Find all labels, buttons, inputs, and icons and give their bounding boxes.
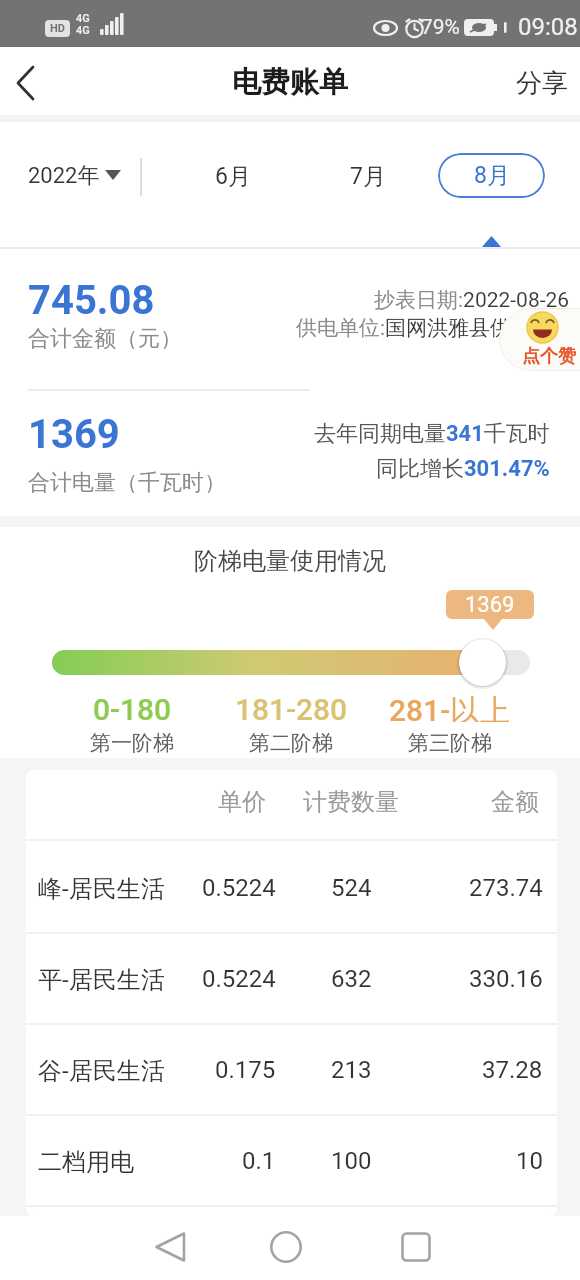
staticText: 1369	[465, 592, 515, 618]
button[interactable]: 谷-居民生活	[26, 1023, 557, 1114]
staticText: 0.5224	[202, 874, 276, 900]
button[interactable]: 7月	[338, 162, 398, 190]
staticText: 谷-居民生活	[38, 1056, 165, 1082]
staticText: 213	[331, 1056, 372, 1082]
staticText: 10	[516, 1147, 543, 1173]
staticText: 平-居民生活	[38, 965, 165, 991]
staticText: 分享	[516, 67, 568, 97]
staticText: 0-180	[93, 692, 172, 722]
staticText: 电费账单	[232, 64, 348, 100]
staticText: 4G	[76, 24, 90, 36]
staticText: 合计电量（千瓦时）	[28, 469, 226, 493]
staticText: 524	[331, 874, 372, 900]
staticText: 抄表日期:2022-08-26	[374, 287, 570, 311]
staticText: 峰-居民生活	[38, 874, 165, 900]
staticText: 0.5224	[202, 965, 276, 991]
staticText: 281-以上	[389, 692, 511, 722]
staticText: 第三阶梯	[408, 730, 492, 754]
button[interactable]	[8, 65, 44, 101]
button[interactable]: 2022年	[28, 162, 108, 190]
staticText: 37.28	[482, 1056, 543, 1082]
staticText: 0.175	[215, 1056, 276, 1082]
button[interactable]	[148, 1225, 192, 1269]
staticText: 第一阶梯	[90, 730, 174, 754]
staticText: 合计金额（元）	[28, 325, 182, 349]
button[interactable]	[264, 1225, 308, 1269]
staticText: 745.08	[28, 277, 155, 319]
staticText: 330.16	[469, 965, 543, 991]
button[interactable]: 分享	[496, 67, 568, 97]
button[interactable]: 8月	[438, 153, 545, 198]
staticText: 计费数量	[303, 787, 399, 813]
button[interactable]: 二档用电	[26, 1114, 557, 1205]
staticText: 09:08	[518, 13, 578, 35]
staticText: 单价	[218, 787, 266, 813]
staticText: 2022年	[28, 162, 100, 190]
staticText: 6月	[215, 162, 251, 190]
button[interactable]: 6月	[203, 162, 263, 190]
staticText: 181-280	[235, 692, 348, 722]
button[interactable]	[394, 1225, 438, 1269]
staticText: 100	[331, 1147, 372, 1173]
staticText: 1369	[28, 411, 120, 453]
staticText: 金额	[491, 787, 539, 813]
staticText: 二档用电	[38, 1147, 134, 1173]
staticText: 632	[331, 965, 372, 991]
button[interactable]: 平-居民生活	[26, 932, 557, 1023]
staticText: HD	[50, 22, 65, 35]
staticText: 79%	[421, 15, 460, 35]
staticText: 同比增长301.47%	[376, 455, 550, 480]
staticText: 阶梯电量使用情况	[194, 546, 386, 574]
button[interactable]: 峰-居民生活	[26, 841, 557, 932]
staticText: 7月	[350, 162, 386, 190]
staticText: 273.74	[469, 874, 543, 900]
staticText: 第二阶梯	[249, 730, 333, 754]
staticText: 4G	[76, 12, 90, 24]
staticText: 去年同期电量341千瓦时	[314, 420, 550, 445]
staticText: 8月	[474, 161, 510, 190]
staticText: 0.1	[242, 1147, 276, 1173]
button[interactable]: 点个赞	[499, 308, 580, 371]
staticText: 供电单位:国网洪雅县供	[296, 315, 512, 339]
staticText: 点个赞	[522, 345, 576, 365]
